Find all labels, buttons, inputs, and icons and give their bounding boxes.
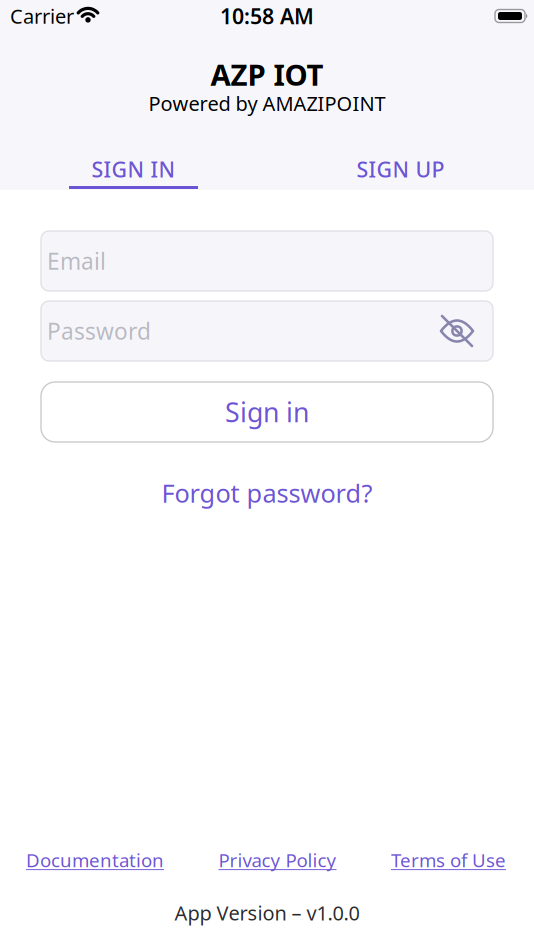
button[interactable]: Privacy Policy <box>218 848 336 872</box>
staticText: 10:58 AM <box>220 2 314 30</box>
staticText: Privacy Policy <box>218 848 336 872</box>
button[interactable]: Forgot password? <box>161 476 372 510</box>
staticText: Sign in <box>225 394 309 430</box>
staticText: Email <box>47 246 106 276</box>
staticText: SIGN IN <box>91 155 175 183</box>
button[interactable]: SIGN IN <box>0 144 267 190</box>
button[interactable]: SIGN UP <box>267 144 534 190</box>
button[interactable]: Sign in <box>41 382 493 442</box>
staticText: SIGN UP <box>356 155 444 183</box>
staticText: Forgot password? <box>161 476 372 510</box>
staticText: Password <box>47 316 151 346</box>
button[interactable]: Show password <box>440 315 474 347</box>
button[interactable]: Terms of Use <box>391 848 506 872</box>
button[interactable]: Documentation <box>26 848 164 872</box>
staticText: Carrier <box>10 3 74 29</box>
staticText: Powered by AMAZIPOINT <box>148 90 385 117</box>
staticText: Terms of Use <box>391 848 506 872</box>
staticText: AZP IOT <box>210 55 323 94</box>
button[interactable]: Email <box>41 231 493 291</box>
staticText: App Version – v1.0.0 <box>174 899 359 926</box>
button[interactable]: Password <box>41 301 493 361</box>
staticText: Documentation <box>26 848 164 872</box>
